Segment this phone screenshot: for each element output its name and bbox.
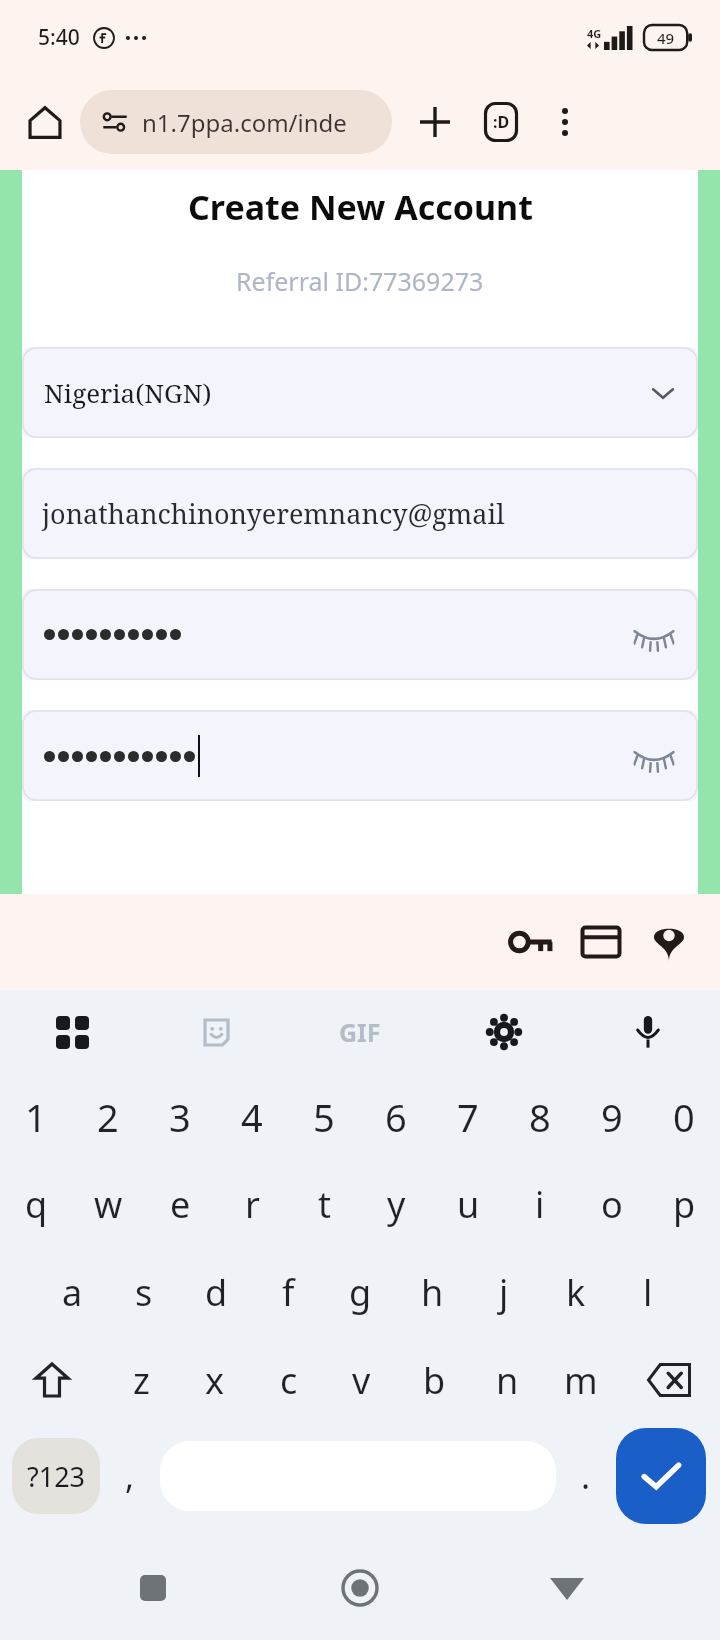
button[interactable]: q [0,1160,72,1248]
button[interactable]: Back [525,1546,609,1630]
button[interactable]: i [504,1160,576,1248]
staticText: g [349,1268,372,1317]
button[interactable]: GIF [288,990,432,1074]
button[interactable]: o [576,1160,648,1248]
staticText: d [205,1268,228,1317]
button[interactable]: k [540,1248,612,1336]
staticText: u [457,1180,480,1229]
button[interactable]: j [468,1248,540,1336]
button[interactable]: 0 [648,1074,720,1160]
button[interactable]: , [100,1424,160,1528]
button[interactable]: New tab [406,93,464,151]
button[interactable]: Addresses [636,907,702,977]
button[interactable]: Enter [616,1428,706,1524]
staticText: 4G [587,26,602,41]
staticText: q [25,1180,48,1229]
button[interactable]: jonathanchinonyeremnancy@gmail [22,468,698,559]
button[interactable]: . [556,1424,616,1528]
button[interactable]: Nigeria(NGN) [22,347,698,438]
button[interactable]: Shift [0,1336,104,1424]
button[interactable]: a [36,1248,108,1336]
button[interactable]: y [360,1160,432,1248]
button[interactable]: 2 [72,1074,144,1160]
button[interactable]: u [432,1160,504,1248]
staticText: r [245,1180,260,1229]
button[interactable]: Passwords [496,907,566,977]
button[interactable]: Show password [632,613,676,657]
staticText: l [643,1268,653,1317]
button[interactable]: e [144,1160,216,1248]
button[interactable]: Show password [22,710,698,801]
button[interactable]: 8 [504,1074,576,1160]
button[interactable]: n [471,1336,544,1424]
button[interactable]: n1.7ppa.com/inde [80,90,392,154]
button[interactable]: 3 [144,1074,216,1160]
button[interactable]: v [325,1336,398,1424]
button[interactable]: 6 [360,1074,432,1160]
staticText: x [205,1356,225,1405]
button[interactable]: z [104,1336,178,1424]
button[interactable]: More options [536,93,594,151]
staticText: 9 [601,1091,623,1143]
button[interactable]: Settings [432,990,576,1074]
button[interactable]: t [288,1160,360,1248]
staticText: ?123 [27,1458,86,1495]
button[interactable]: 7 [432,1074,504,1160]
staticText: i [535,1180,545,1229]
staticText: n [496,1356,519,1405]
staticText: GIF [339,1015,381,1049]
button[interactable]: Payment methods [566,907,636,977]
button[interactable]: 1 [0,1074,72,1160]
staticText: 2 [97,1091,119,1143]
button[interactable]: c [252,1336,325,1424]
staticText: y [387,1180,406,1229]
button[interactable]: Backspace [617,1336,720,1424]
button[interactable]: p [648,1160,720,1248]
button[interactable]: Keyboard modes [0,990,144,1074]
staticText: s [135,1268,153,1317]
button[interactable]: Tabs [472,93,530,151]
staticText: 6 [385,1091,407,1143]
button[interactable]: s [108,1248,180,1336]
button[interactable]: x [178,1336,252,1424]
staticText: o [601,1180,623,1229]
staticText: b [423,1356,446,1405]
staticText: 5 [313,1091,335,1143]
button[interactable]: b [398,1336,471,1424]
button[interactable]: Show password [22,589,698,680]
staticText: , [125,1453,135,1499]
staticText: . [581,1453,591,1499]
staticText: Nigeria(NGN) [44,375,212,410]
staticText: j [499,1268,509,1317]
button[interactable]: 4 [216,1074,288,1160]
button[interactable]: g [324,1248,396,1336]
button[interactable]: Home [318,1546,402,1630]
staticText: t [318,1180,331,1229]
button[interactable]: h [396,1248,468,1336]
staticText: 1 [25,1091,47,1143]
staticText: a [62,1268,83,1317]
staticText: n1.7ppa.com/inde [142,106,347,139]
button[interactable]: d [180,1248,252,1336]
button[interactable]: Home [14,91,76,153]
staticText: w [94,1180,123,1229]
button[interactable]: Recent apps [111,1546,195,1630]
staticText: 7 [457,1091,479,1143]
button[interactable]: ?123 [12,1438,100,1514]
staticText: :D [493,111,510,133]
button[interactable]: 5 [288,1074,360,1160]
staticText: f [282,1268,295,1317]
button[interactable]: w [72,1160,144,1248]
button[interactable]: Voice input [576,990,720,1074]
button[interactable]: r [216,1160,288,1248]
staticText: 3 [169,1091,191,1143]
button[interactable]: Show password [632,734,676,778]
button[interactable]: m [544,1336,617,1424]
button[interactable]: 9 [576,1074,648,1160]
button[interactable]: l [612,1248,684,1336]
button[interactable]: Stickers [144,990,288,1074]
button[interactable]: f [252,1248,324,1336]
staticText: e [170,1180,191,1229]
staticText: m [564,1356,598,1405]
